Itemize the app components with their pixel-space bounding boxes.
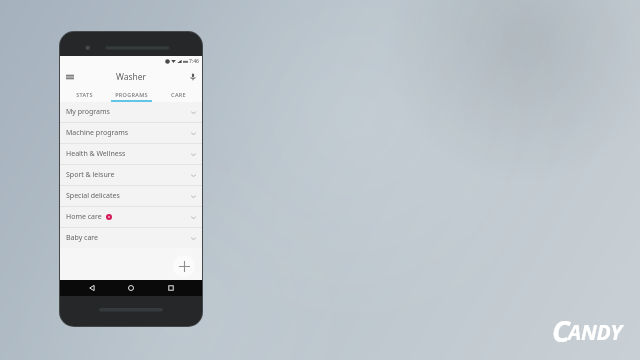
staticText: Washer [116, 71, 147, 83]
button[interactable]: STATS [60, 86, 108, 102]
staticText: Home care [66, 212, 102, 222]
staticText: Sport & leisure [66, 170, 115, 180]
button[interactable]: Machine programs [60, 123, 202, 143]
button[interactable]: Voice search [186, 70, 199, 83]
button[interactable]: My programs [60, 102, 202, 122]
staticText: Health & Wellness [66, 149, 126, 159]
button[interactable]: Sport & leisure [60, 165, 202, 185]
staticText: CARE [171, 91, 186, 98]
button[interactable]: Home care [60, 207, 202, 227]
button[interactable]: Baby care [60, 228, 202, 248]
staticText: ANDY [568, 318, 622, 347]
staticText: Machine programs [66, 128, 129, 138]
staticText: Special delicates [66, 191, 120, 201]
button[interactable]: CARE [155, 86, 202, 102]
button[interactable]: Add program [173, 255, 195, 277]
staticText: My programs [66, 107, 110, 117]
staticText: 7:46 [189, 58, 199, 65]
button[interactable]: PROGRAMS [108, 86, 155, 102]
staticText: PROGRAMS [115, 91, 148, 98]
button[interactable]: Home [123, 280, 139, 296]
button[interactable]: Back [84, 280, 100, 296]
staticText: C [552, 311, 570, 350]
button[interactable]: Open navigation menu [63, 70, 76, 83]
button[interactable]: Health & Wellness [60, 144, 202, 164]
button[interactable]: Recent apps [163, 280, 179, 296]
staticText: STATS [76, 91, 93, 98]
staticText: Baby care [66, 233, 99, 243]
button[interactable]: Special delicates [60, 186, 202, 206]
